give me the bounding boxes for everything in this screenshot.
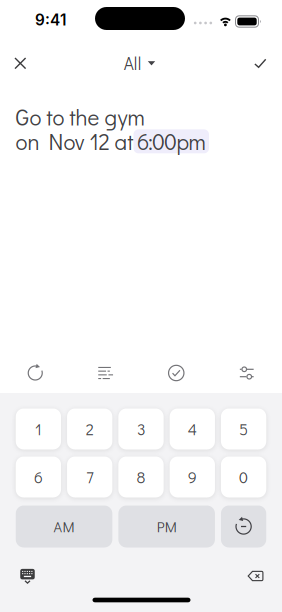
staticText: 0 (239, 466, 248, 487)
button[interactable]: 2 (67, 408, 112, 449)
button[interactable]: 7 (67, 456, 112, 497)
button[interactable]: 6 (16, 456, 61, 497)
button[interactable]: 4 (170, 408, 215, 449)
button[interactable]: 9 (170, 456, 215, 497)
staticText: 5 (239, 418, 248, 439)
button[interactable]: 8 (118, 456, 164, 497)
button[interactable]: Options (211, 353, 282, 393)
button[interactable]: Reset time (221, 505, 266, 547)
button[interactable]: PM (118, 505, 215, 547)
staticText: 9 (188, 466, 197, 487)
button[interactable]: Repeat (0, 353, 70, 393)
staticText: PM (157, 517, 177, 536)
staticText: 9:41 (35, 11, 66, 29)
button[interactable]: Complete (141, 353, 211, 393)
staticText: 1 (35, 418, 42, 439)
staticText: 6 (34, 466, 43, 487)
staticText: AM (53, 517, 74, 536)
staticText: 7 (86, 466, 93, 487)
button[interactable]: Delete (241, 564, 269, 588)
staticText: 8 (136, 466, 145, 487)
button[interactable]: Close (5, 48, 35, 78)
button[interactable]: 0 (221, 456, 266, 497)
button[interactable]: Save (245, 48, 275, 78)
button[interactable]: 1 (16, 408, 61, 449)
button[interactable]: All lists (124, 52, 155, 75)
staticText: All (124, 52, 142, 75)
button[interactable]: 3 (118, 408, 164, 449)
staticText: 3 (137, 418, 145, 439)
button[interactable]: AM (16, 505, 112, 547)
staticText: 6:00pm (137, 127, 205, 156)
button[interactable]: Show keyboard (13, 564, 41, 588)
button[interactable]: 5 (221, 408, 266, 449)
staticText: 4 (188, 418, 197, 439)
staticText: Go to the gym (15, 102, 144, 131)
button[interactable]: Notes (70, 353, 141, 393)
staticText: 2 (86, 418, 94, 439)
staticText: on Nov 12 at (15, 127, 133, 156)
